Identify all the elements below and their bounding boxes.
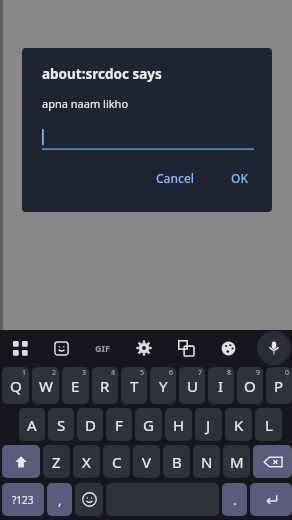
staticText: 5 [140, 368, 145, 378]
staticText: , [58, 491, 62, 509]
button[interactable]: OK [221, 164, 258, 192]
staticText: OK [231, 170, 248, 186]
button[interactable]: R [92, 367, 118, 404]
staticText: F [115, 415, 123, 435]
button[interactable]: Backspace [253, 445, 292, 478]
staticText: P [274, 376, 284, 396]
staticText: 2 [52, 368, 57, 378]
staticText: 7 [198, 368, 203, 378]
button[interactable]: G [135, 408, 162, 441]
button[interactable]: A [19, 408, 45, 441]
button[interactable]: Q [2, 367, 29, 404]
staticText: 6 [169, 368, 174, 378]
staticText: I [218, 376, 224, 396]
staticText: S [57, 415, 66, 435]
staticText: W [39, 376, 53, 396]
staticText: U [187, 376, 198, 396]
staticText: V [142, 452, 152, 472]
staticText: Q [10, 376, 22, 396]
staticText: apna naam likho [42, 96, 129, 111]
staticText: 0 [285, 368, 290, 378]
staticText: E [71, 376, 80, 396]
button[interactable]: H [165, 408, 192, 441]
button[interactable]: J [195, 408, 222, 441]
button[interactable]: S [48, 408, 74, 441]
staticText: X [82, 452, 91, 472]
button[interactable]: B [163, 445, 190, 478]
button[interactable]: Translate [173, 335, 199, 361]
button[interactable]: F [106, 408, 132, 441]
staticText: L [265, 415, 273, 435]
button[interactable]: W [32, 367, 59, 404]
staticText: 1 [22, 368, 27, 378]
button[interactable]: I [208, 367, 234, 404]
staticText: Z [52, 452, 61, 472]
staticText: Cancel [156, 170, 195, 186]
button[interactable]: U [179, 367, 205, 404]
button[interactable]: V [133, 445, 160, 478]
button[interactable]: Cancel [146, 164, 205, 192]
staticText: M [230, 452, 244, 472]
button[interactable]: M [223, 445, 250, 478]
staticText: R [100, 376, 110, 396]
staticText: 4 [111, 368, 116, 378]
staticText: about:srcdoc says [42, 65, 162, 83]
staticText: B [172, 452, 182, 472]
button[interactable]: Voice input [257, 331, 291, 365]
staticText: 8 [227, 368, 232, 378]
button[interactable]: L [255, 408, 282, 441]
staticText: 9 [256, 368, 261, 378]
button[interactable]: P [266, 367, 292, 404]
button[interactable]: Z [43, 445, 70, 478]
button[interactable] [42, 128, 254, 150]
button[interactable]: Apps [7, 335, 33, 361]
staticText: 3 [82, 368, 87, 378]
button[interactable]: K [225, 408, 252, 441]
staticText: N [201, 452, 213, 472]
button[interactable]: C [103, 445, 130, 478]
staticText: G [143, 415, 154, 435]
staticText: Y [159, 376, 168, 396]
button[interactable]: Comma [47, 483, 72, 516]
staticText: ?123 [12, 493, 34, 507]
button[interactable]: Enter [250, 483, 292, 516]
staticText: . [233, 491, 237, 509]
staticText: GIF [95, 342, 110, 354]
button[interactable]: Shift [2, 445, 40, 478]
button[interactable]: Emoji [75, 483, 103, 516]
button[interactable]: E [62, 367, 89, 404]
button[interactable]: Period [222, 483, 247, 516]
staticText: H [173, 415, 185, 435]
button[interactable]: Stickers [48, 335, 74, 361]
staticText: A [27, 415, 37, 435]
staticText: D [85, 415, 96, 435]
button[interactable]: D [77, 408, 103, 441]
button[interactable]: ?123 [2, 483, 44, 516]
staticText: T [130, 376, 139, 396]
button[interactable]: O [237, 367, 263, 404]
staticText: O [244, 376, 256, 396]
staticText: C [112, 452, 122, 472]
button[interactable]: N [193, 445, 220, 478]
button[interactable]: Settings [131, 335, 157, 361]
staticText: J [206, 415, 211, 435]
button[interactable]: T [121, 367, 147, 404]
button[interactable]: Themes [215, 335, 241, 361]
button[interactable]: Y [150, 367, 176, 404]
button[interactable]: GIF [89, 335, 115, 361]
staticText: K [234, 415, 244, 435]
button[interactable]: X [73, 445, 100, 478]
